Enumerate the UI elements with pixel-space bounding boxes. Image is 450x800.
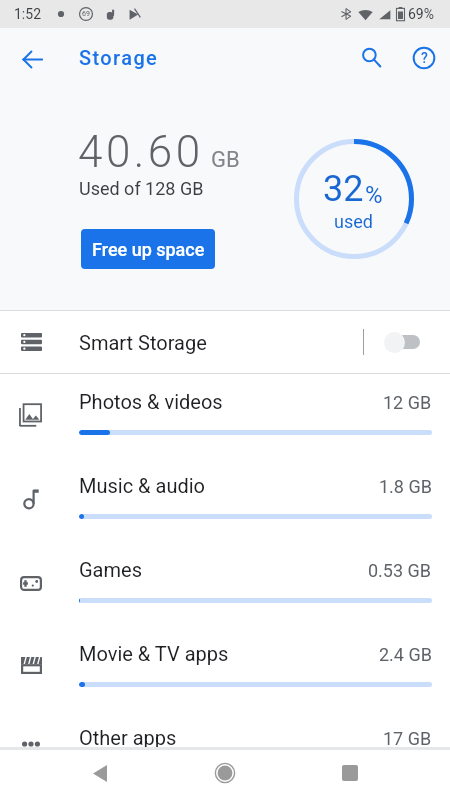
staticText: 32 <box>323 168 364 210</box>
staticText: % <box>365 181 383 209</box>
staticText: 1.8 GB <box>379 476 432 497</box>
button[interactable]: Recent apps <box>326 749 374 797</box>
button[interactable]: Smart Storage toggle <box>374 320 430 364</box>
staticText: Smart Storage <box>79 331 207 354</box>
button[interactable]: Other apps <box>0 710 450 794</box>
staticText: Music & audio <box>79 474 205 497</box>
staticText: Free up space <box>92 239 205 260</box>
button[interactable]: Movie & TV apps <box>0 626 450 710</box>
button[interactable]: Music & audio <box>0 458 450 542</box>
button[interactable]: Smart Storage <box>0 311 450 373</box>
staticText: 69 <box>82 10 90 18</box>
button[interactable]: Search <box>349 35 393 79</box>
button[interactable]: Help and feedback <box>402 36 446 80</box>
staticText: Used of 128 GB <box>79 178 204 199</box>
staticText: Movie & TV apps <box>79 642 229 665</box>
staticText: Storage <box>79 46 159 69</box>
button[interactable]: Navigate up <box>10 37 54 81</box>
staticText: ? <box>421 50 428 66</box>
staticText: 1:52 <box>14 6 41 22</box>
button[interactable]: Free up space <box>81 229 215 269</box>
staticText: 40.60 <box>78 126 204 178</box>
staticText: Other apps <box>79 726 177 749</box>
staticText: 2.4 GB <box>379 644 432 665</box>
button[interactable]: Back <box>76 749 124 797</box>
staticText: 0.53 GB <box>368 560 432 581</box>
button[interactable]: Photos & videos <box>0 374 450 458</box>
button[interactable]: Games <box>0 542 450 626</box>
staticText: Games <box>79 558 142 581</box>
staticText: 69% <box>408 6 434 22</box>
button[interactable]: Home <box>201 749 249 797</box>
staticText: GB <box>211 147 240 173</box>
staticText: used <box>334 211 373 232</box>
staticText: Photos & videos <box>79 390 223 413</box>
staticText: 17 GB <box>383 728 432 749</box>
staticText: 12 GB <box>383 392 432 413</box>
